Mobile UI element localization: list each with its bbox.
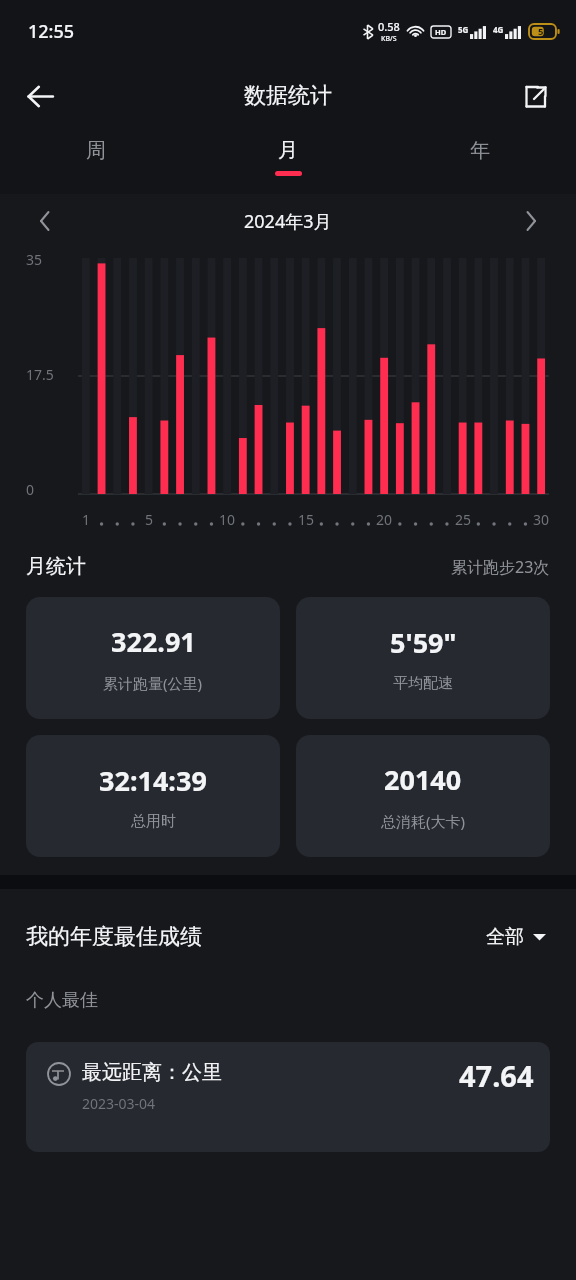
staticText: 月统计 bbox=[26, 554, 86, 579]
staticText: 32:14:39 bbox=[99, 762, 207, 799]
button[interactable]: 月 bbox=[192, 130, 384, 194]
button[interactable]: 20140 bbox=[296, 735, 550, 857]
staticText: 月 bbox=[278, 138, 298, 163]
button[interactable]: 5'59" bbox=[296, 597, 550, 719]
staticText: 25 bbox=[452, 510, 474, 529]
button[interactable]: 32:14:39 bbox=[26, 735, 280, 857]
staticText: 平均配速 bbox=[393, 674, 453, 693]
staticText: 2024年3月 bbox=[244, 209, 332, 234]
staticText: 0.58 bbox=[378, 19, 400, 34]
staticText: 10 bbox=[216, 510, 238, 529]
staticText: 累计跑步23次 bbox=[451, 556, 550, 578]
staticText: 15 bbox=[295, 510, 317, 529]
staticText: 最远距离：公里 bbox=[82, 1060, 222, 1085]
staticText: 12:55 bbox=[28, 19, 75, 44]
staticText: 30 bbox=[530, 510, 552, 529]
staticText: 17.5 bbox=[26, 365, 54, 384]
staticText: 322.91 bbox=[111, 623, 196, 660]
button[interactable]: 最远距离：公里 bbox=[26, 1042, 550, 1152]
staticText: 总用时 bbox=[131, 812, 176, 831]
button[interactable]: Share bbox=[510, 71, 560, 121]
staticText: 20 bbox=[373, 510, 395, 529]
staticText: 全部 bbox=[486, 925, 524, 949]
button[interactable]: Next month bbox=[510, 200, 552, 242]
staticText: 5G bbox=[458, 24, 469, 35]
button[interactable]: 全部 bbox=[482, 921, 550, 953]
staticText: KB/S bbox=[381, 34, 397, 44]
staticText: 总消耗(大卡) bbox=[381, 811, 466, 831]
staticText: 累计跑量(公里) bbox=[103, 673, 203, 693]
button[interactable]: 周 bbox=[0, 130, 192, 194]
staticText: 周 bbox=[86, 138, 106, 163]
staticText: 1 bbox=[75, 510, 97, 529]
staticText: 20140 bbox=[384, 761, 462, 798]
staticText: 年 bbox=[470, 138, 490, 163]
button[interactable]: Back bbox=[14, 70, 66, 122]
staticText: 52 bbox=[538, 25, 549, 38]
staticText: 2023-03-04 bbox=[82, 1094, 156, 1113]
staticText: 4G bbox=[493, 24, 504, 35]
staticText: 47.64 bbox=[459, 1056, 534, 1095]
staticText: 35 bbox=[26, 250, 43, 269]
staticText: 5'59" bbox=[390, 624, 457, 661]
staticText: 0 bbox=[26, 480, 35, 499]
staticText: 我的年度最佳成绩 bbox=[26, 923, 202, 951]
staticText: 数据统计 bbox=[244, 82, 332, 110]
staticText: 个人最佳 bbox=[26, 989, 98, 1012]
button[interactable]: 322.91 bbox=[26, 597, 280, 719]
button[interactable]: 年 bbox=[384, 130, 576, 194]
staticText: 5 bbox=[138, 510, 160, 529]
staticText: HD bbox=[435, 27, 447, 37]
button[interactable]: Previous month bbox=[24, 200, 66, 242]
